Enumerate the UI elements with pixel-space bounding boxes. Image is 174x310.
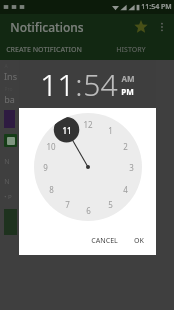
button[interactable]: HISTORY xyxy=(87,40,174,60)
staticText: CANCEL xyxy=(91,236,118,246)
button[interactable]: 11 xyxy=(40,64,75,105)
staticText: 11:54 PM xyxy=(141,2,172,12)
staticText: 7 xyxy=(65,199,70,210)
button[interactable]: Favorite xyxy=(132,18,150,36)
staticText: 5 xyxy=(108,199,113,210)
staticText: 3 xyxy=(129,162,134,173)
staticText: HISTORY xyxy=(116,45,146,55)
staticText: ba xyxy=(4,93,15,105)
button[interactable]: CANCEL xyxy=(85,231,124,251)
staticText: OK xyxy=(134,236,144,246)
staticText: N xyxy=(4,157,10,167)
staticText: 1 xyxy=(108,125,113,136)
staticText: 6 xyxy=(86,205,91,216)
button[interactable]: AM xyxy=(121,73,135,84)
staticText: • P xyxy=(4,193,12,201)
staticText: Notifications xyxy=(10,19,84,35)
staticText: 11 xyxy=(62,125,72,136)
button[interactable]: PM xyxy=(121,86,134,97)
staticText: Ins xyxy=(4,70,17,82)
staticText: 2 xyxy=(123,141,128,152)
staticText: 12 xyxy=(83,119,93,130)
button[interactable]: CREATE NOTIFICATION xyxy=(0,40,87,60)
button[interactable]: OK xyxy=(128,231,150,251)
staticText: 8 xyxy=(49,184,54,195)
staticText: N xyxy=(4,177,10,187)
button[interactable]: 54 xyxy=(83,64,118,105)
staticText: : xyxy=(75,64,83,105)
staticText: 4 xyxy=(123,184,128,195)
button[interactable]: Clock face, 11 selected xyxy=(34,113,142,221)
staticText: CREATE NOTIFICATION xyxy=(6,45,82,55)
staticText: 9 xyxy=(43,162,48,173)
button[interactable]: More options xyxy=(154,19,170,35)
staticText: 10 xyxy=(46,141,56,152)
